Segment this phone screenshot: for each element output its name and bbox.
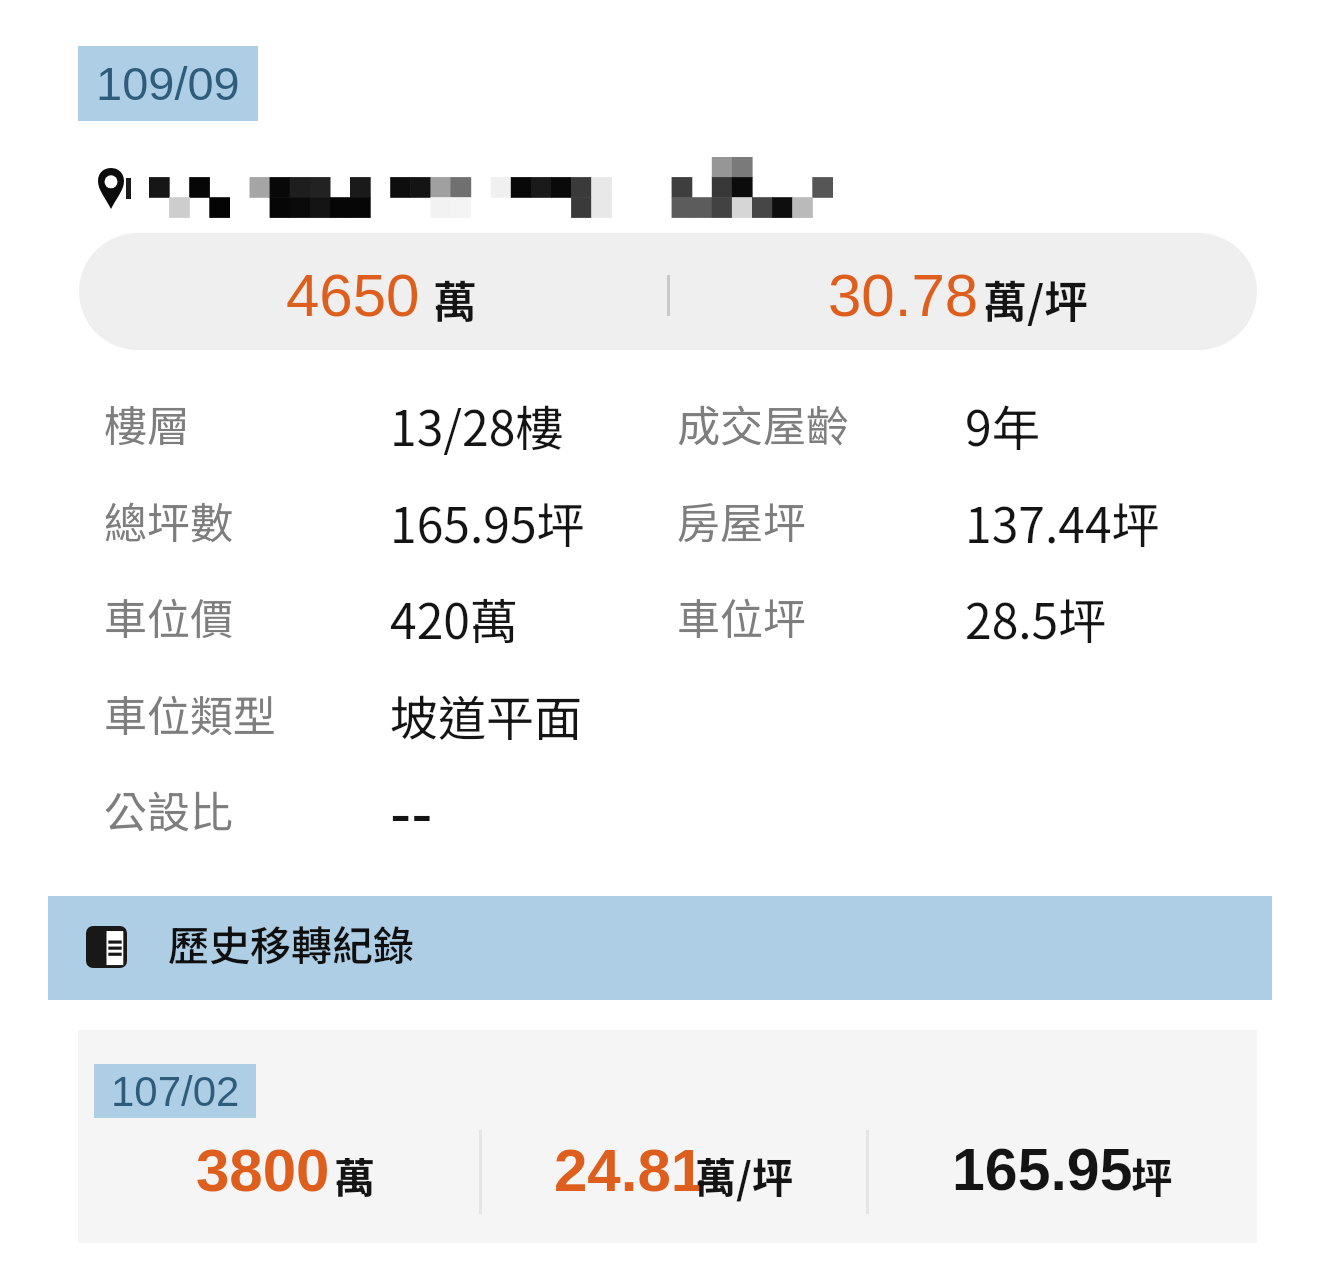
- staticText: 萬: [433, 267, 477, 331]
- staticText: 坡道平面: [390, 680, 583, 750]
- staticText: 28.5坪: [965, 583, 1107, 653]
- staticText: 公設比: [104, 778, 233, 840]
- staticText: 樓層: [104, 392, 190, 454]
- staticText: 13/28樓: [390, 390, 564, 460]
- staticText: 165.95坪: [390, 487, 585, 557]
- staticText: 109/09: [96, 57, 240, 110]
- button[interactable]: 地址: [90, 152, 840, 224]
- staticText: 萬: [334, 1145, 375, 1204]
- button[interactable]: 107/02: [78, 1030, 1257, 1243]
- other: 歷史移轉紀錄: [86, 926, 127, 968]
- staticText: 車位類型: [104, 682, 276, 744]
- staticText: 107/02: [111, 1068, 240, 1115]
- staticText: 車位坪: [677, 585, 806, 647]
- button[interactable]: 歷史移轉紀錄: [48, 896, 1272, 1000]
- staticText: 歷史移轉紀錄: [168, 913, 414, 972]
- staticText: 420萬: [390, 583, 518, 653]
- staticText: 165.95: [952, 1137, 1133, 1203]
- staticText: 成交屋齡: [677, 392, 849, 454]
- staticText: 總坪數: [104, 489, 233, 551]
- staticText: 9年: [965, 390, 1040, 460]
- button[interactable]: 4650: [79, 233, 1257, 350]
- staticText: 房屋坪: [677, 489, 806, 551]
- staticText: 萬/坪: [695, 1145, 793, 1204]
- staticText: --: [390, 778, 433, 850]
- staticText: 3800: [196, 1137, 330, 1204]
- staticText: 30.78: [828, 262, 979, 329]
- staticText: 4650: [286, 262, 420, 329]
- staticText: 車位價: [104, 585, 233, 647]
- button[interactable]: 109/09: [78, 46, 258, 121]
- staticText: 坪: [1131, 1145, 1172, 1204]
- staticText: 24.81: [554, 1137, 705, 1204]
- staticText: 萬/坪: [983, 267, 1089, 331]
- staticText: 137.44坪: [965, 487, 1160, 557]
